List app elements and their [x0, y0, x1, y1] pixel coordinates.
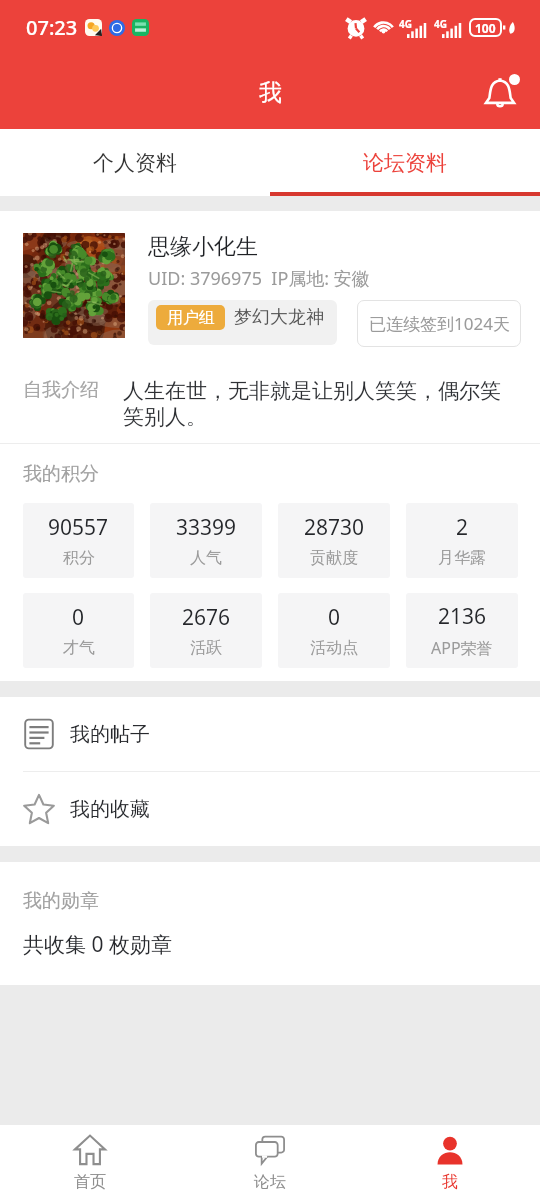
staticText: 个人资料 — [93, 150, 177, 176]
button[interactable]: 90557 — [23, 503, 134, 578]
button[interactable]: 个人资料 — [0, 129, 270, 196]
button[interactable]: 论坛 — [180, 1125, 360, 1200]
button[interactable]: 用户组 — [148, 300, 337, 345]
button[interactable]: Avatar — [23, 233, 125, 338]
staticText: 思缘小化生 — [148, 233, 258, 261]
staticText: 贡献度 — [310, 548, 358, 568]
button[interactable]: 0 — [23, 593, 134, 668]
staticText: UID: 3796975 IP属地: 安徽 — [148, 266, 370, 291]
button[interactable]: 论坛资料 — [270, 129, 540, 196]
button[interactable]: 首页 — [0, 1125, 180, 1200]
staticText: 积分 — [63, 548, 95, 568]
staticText: 首页 — [74, 1172, 106, 1192]
staticText: 2676 — [182, 603, 231, 632]
staticText: 0 — [328, 603, 341, 632]
button[interactable]: 28730 — [278, 503, 390, 578]
staticText: 论坛资料 — [363, 150, 447, 176]
button[interactable]: 33399 — [150, 503, 262, 578]
staticText: 人生在世，无非就是让别人笑笑，偶尔笑笑别人。 — [123, 378, 516, 430]
staticText: 活跃 — [190, 638, 222, 658]
staticText: 论坛 — [254, 1172, 286, 1192]
staticText: 2 — [456, 513, 469, 542]
button[interactable]: Notifications — [476, 69, 524, 117]
staticText: 4G — [399, 17, 412, 31]
staticText: 我 — [442, 1172, 458, 1192]
staticText: 2136 — [438, 602, 487, 631]
staticText: 100 — [475, 20, 496, 36]
button[interactable]: 我 — [360, 1125, 540, 1200]
staticText: 月华露 — [438, 548, 486, 568]
staticText: 我 — [259, 78, 282, 107]
button[interactable]: 已连续签到1024天 — [357, 300, 521, 347]
staticText: 0 — [72, 603, 85, 632]
button[interactable]: 2136 — [406, 593, 518, 668]
button[interactable]: 2676 — [150, 593, 262, 668]
button[interactable]: 我的收藏 — [0, 772, 540, 846]
staticText: 共收集 0 枚勋章 — [23, 930, 172, 959]
staticText: 我的帖子 — [70, 722, 150, 747]
staticText: 活动点 — [310, 638, 358, 658]
staticText: 28730 — [304, 513, 365, 542]
staticText: 梦幻大龙神 — [234, 306, 324, 329]
staticText: 我的积分 — [23, 462, 99, 486]
staticText: 人气 — [190, 548, 222, 568]
button[interactable]: 2 — [406, 503, 518, 578]
staticText: 才气 — [63, 638, 95, 658]
staticText: 我的收藏 — [70, 797, 150, 822]
staticText: 4G — [434, 17, 447, 31]
staticText: 已连续签到1024天 — [369, 312, 510, 335]
staticText: 33399 — [176, 513, 237, 542]
button[interactable]: 我的帖子 — [0, 697, 540, 771]
button[interactable]: 0 — [278, 593, 390, 668]
staticText: 自我介绍 — [23, 378, 99, 402]
staticText: 90557 — [48, 513, 109, 542]
staticText: APP荣誉 — [431, 637, 493, 659]
staticText: 我的勋章 — [23, 889, 99, 913]
staticText: 用户组 — [167, 308, 215, 328]
staticText: 07:23 — [26, 14, 78, 41]
